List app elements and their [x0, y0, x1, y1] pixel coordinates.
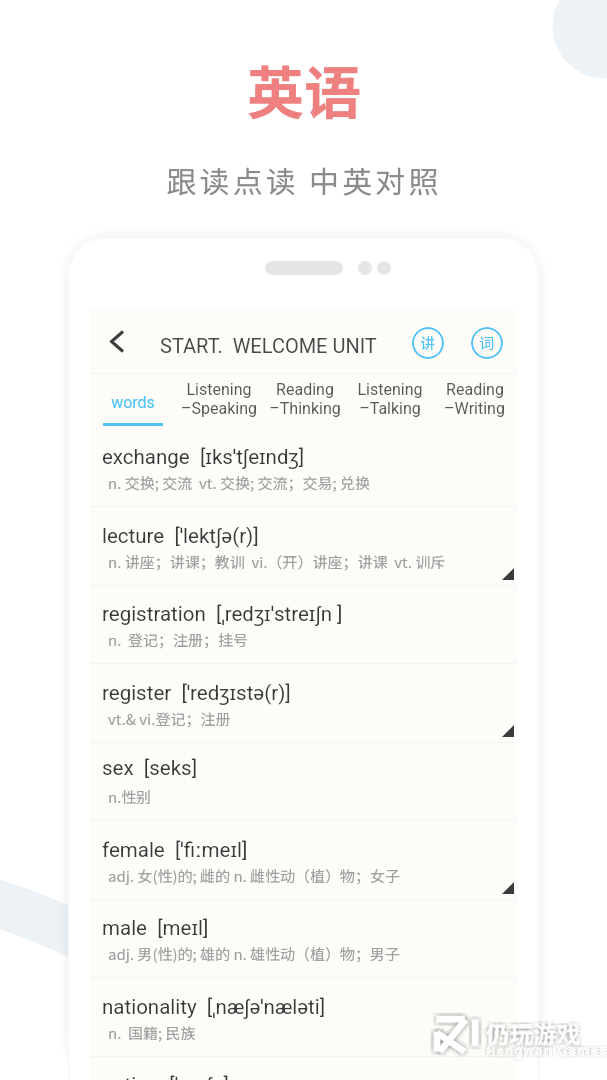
staticText: Rengwan Games	[490, 1040, 607, 1055]
staticText: n. 交换; 交流 vt. 交换; 交流；交易; 兑换	[108, 472, 371, 494]
staticText: Rengwan Games	[487, 1040, 607, 1055]
staticText: n. 讲座；讲课；教训 vi.（开）讲座；讲课 vt. 训斥	[108, 551, 446, 573]
button[interactable]: nation [ˈneɪʃn]	[90, 1056, 517, 1080]
staticText: 仍玩游戏	[489, 1013, 583, 1046]
staticText: 仍玩游戏	[486, 1016, 580, 1049]
staticText: words	[111, 393, 155, 412]
staticText: registration [ˌredʒɪˈstreɪʃn ]	[102, 599, 343, 627]
button[interactable]: Back	[102, 326, 132, 356]
button[interactable]: Listening	[347, 373, 432, 428]
button[interactable]: 讲	[412, 327, 444, 359]
staticText: n. 登记；注册；挂号	[108, 629, 249, 651]
staticText: 跟读点读 中英对照	[166, 158, 442, 201]
staticText: 讲	[420, 332, 436, 354]
staticText: adj. 男(性)的; 雄的 n. 雄性动（植）物；男子	[108, 943, 401, 965]
staticText: Rengwan Games	[487, 1043, 607, 1058]
staticText: vt.& vi.登记；注册	[108, 708, 231, 730]
staticText: START. WELCOME UNIT	[160, 334, 377, 357]
button[interactable]: nationality [ˌnæʃəˈnæləti]	[90, 978, 517, 1057]
staticText: –Talking	[359, 399, 421, 418]
staticText: 仍玩游戏	[489, 1016, 583, 1049]
staticText: male [meɪl]	[102, 913, 209, 941]
staticText: 词	[479, 332, 495, 354]
button[interactable]: words	[90, 373, 176, 428]
staticText: –Speaking	[181, 399, 257, 418]
button[interactable]: registration [ˌredʒɪˈstreɪʃn ]	[90, 585, 517, 664]
staticText: 仍玩游戏	[486, 1013, 580, 1046]
staticText: 仍玩游戏	[483, 1013, 577, 1046]
staticText: sex [seks]	[102, 756, 198, 780]
button[interactable]: male [meɪl]	[90, 899, 517, 978]
staticText: Reading	[276, 380, 334, 399]
button[interactable]: 词	[471, 327, 503, 359]
staticText: Rengwan Games	[490, 1046, 607, 1061]
staticText: n. 国籍; 民族	[108, 1022, 196, 1044]
staticText: 仍玩游戏	[486, 1016, 580, 1049]
button[interactable]: female [ˈfiːmeɪl]	[90, 821, 517, 900]
staticText: Rengwan Games	[490, 1043, 607, 1058]
staticText: nationality [ˌnæʃəˈnæləti]	[102, 992, 326, 1020]
staticText: n.性别	[108, 786, 152, 808]
staticText: exchange [ɪksˈtʃeɪndʒ]	[102, 442, 305, 470]
staticText: 仍玩游戏	[483, 1016, 577, 1049]
staticText: nation [ˈneɪʃn]	[102, 1070, 229, 1080]
staticText: Listening	[357, 380, 423, 399]
button[interactable]: sex [seks]	[90, 742, 517, 821]
staticText: –Writing	[444, 399, 505, 418]
staticText: Rengwan Games	[484, 1046, 605, 1061]
staticText: Rengwan Games	[487, 1046, 607, 1061]
button[interactable]: Reading	[262, 373, 347, 428]
staticText: Reading	[446, 380, 504, 399]
button[interactable]: exchange [ɪksˈtʃeɪndʒ]	[90, 428, 517, 507]
staticText: Rengwan Games	[484, 1043, 605, 1058]
button[interactable]: lecture [ˈlektʃə(r)]	[90, 507, 517, 586]
staticText: lecture [ˈlektʃə(r)]	[102, 521, 259, 549]
button[interactable]: Listening	[176, 373, 262, 428]
staticText: Rengwan Games	[484, 1040, 605, 1055]
button[interactable]: Reading	[432, 373, 517, 428]
staticText: female [ˈfiːmeɪl]	[102, 835, 248, 863]
staticText: register [ˈredʒɪstə(r)]	[102, 678, 291, 706]
staticText: adj. 女(性)的; 雌的 n. 雌性动（植）物；女子	[108, 865, 401, 887]
staticText: –Thinking	[269, 399, 341, 418]
staticText: Rengwan Games	[487, 1043, 607, 1058]
staticText: 仍玩游戏	[489, 1019, 583, 1052]
staticText: 英语	[247, 48, 361, 131]
staticText: Listening	[186, 380, 252, 399]
button[interactable]: register [ˈredʒɪstə(r)]	[90, 664, 517, 743]
staticText: 仍玩游戏	[486, 1019, 580, 1052]
staticText: 仍玩游戏	[483, 1019, 577, 1052]
